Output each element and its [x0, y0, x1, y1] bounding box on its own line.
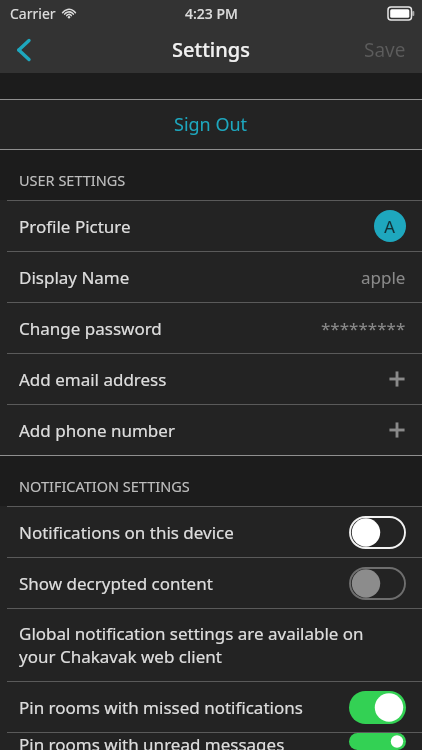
button[interactable]: Display Name — [0, 252, 422, 302]
staticText: Settings — [172, 36, 250, 63]
staticText: 4:23 PM — [185, 4, 238, 23]
staticText: Add email address — [19, 368, 167, 391]
button[interactable]: Profile Picture — [0, 201, 422, 251]
other: Add — [388, 421, 406, 439]
button[interactable]: On — [349, 733, 406, 750]
staticText: A — [384, 215, 396, 238]
staticText: ********* — [321, 317, 406, 340]
button[interactable]: Pin rooms with unread messages — [0, 733, 422, 750]
button[interactable]: Off — [349, 567, 406, 600]
staticText: Sign Out — [174, 112, 248, 137]
button[interactable]: Show decrypted content — [0, 558, 422, 608]
staticText: apple — [361, 266, 406, 289]
button[interactable]: Off — [349, 516, 406, 549]
staticText: Global notification settings are availab… — [19, 622, 400, 668]
button[interactable]: Change password — [0, 303, 422, 353]
button[interactable]: Pin rooms with missed notifications — [0, 682, 422, 732]
button[interactable]: Notifications on this device — [0, 507, 422, 557]
staticText: USER SETTINGS — [19, 170, 126, 190]
staticText: NOTIFICATION SETTINGS — [19, 476, 190, 496]
staticText: Pin rooms with unread messages — [19, 733, 285, 750]
staticText: Save — [364, 37, 406, 63]
button[interactable]: Add email address — [0, 354, 422, 404]
staticText: Add phone number — [19, 419, 175, 442]
staticText: Carrier — [10, 4, 56, 23]
staticText: Change password — [19, 317, 162, 340]
staticText: Display Name — [19, 266, 130, 289]
button[interactable]: Back — [0, 26, 46, 73]
button[interactable]: Sign Out — [0, 100, 422, 149]
staticText: Pin rooms with missed notifications — [19, 696, 303, 719]
button[interactable]: On — [349, 691, 406, 724]
staticText: Notifications on this device — [19, 521, 234, 544]
button[interactable]: Add phone number — [0, 405, 422, 455]
button[interactable]: Save — [348, 26, 422, 73]
staticText: Show decrypted content — [19, 572, 213, 595]
staticText: Profile Picture — [19, 215, 131, 238]
other: Add — [388, 370, 406, 388]
